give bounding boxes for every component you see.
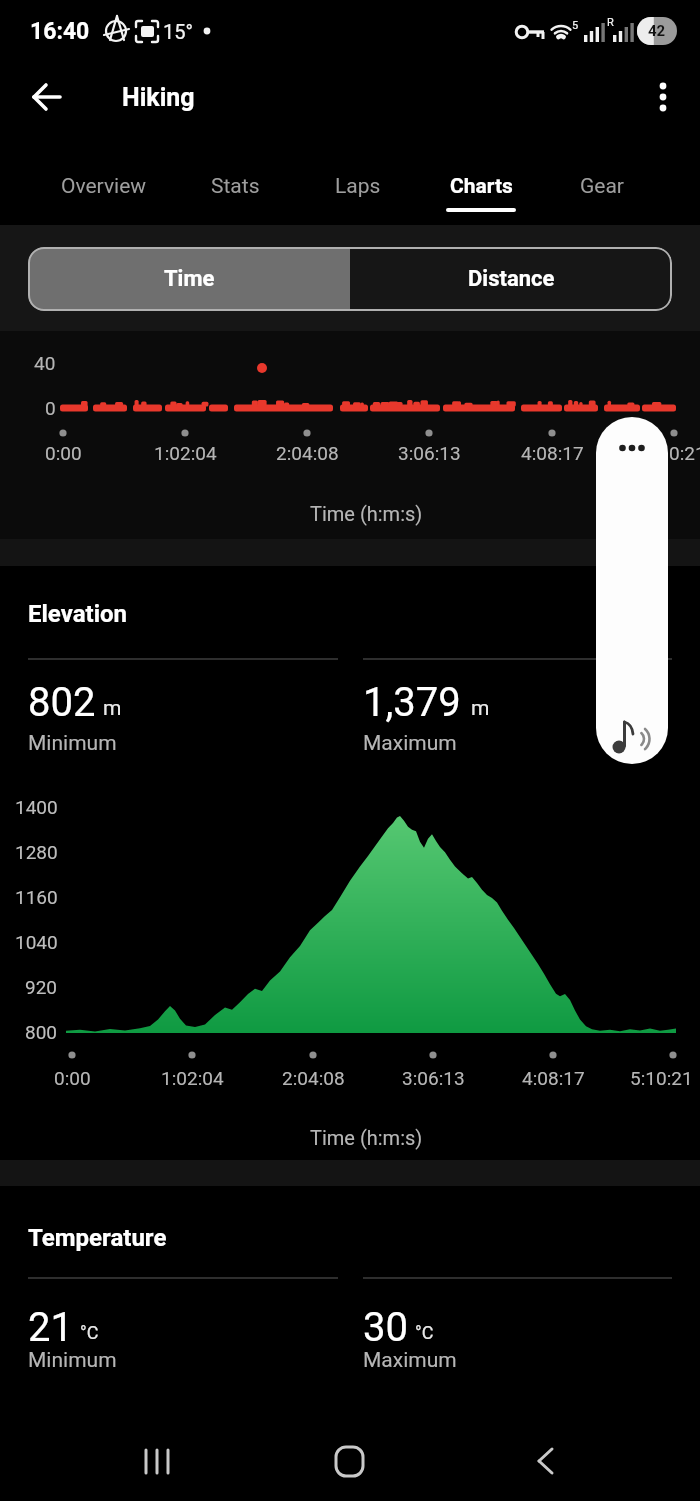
staticText: 0 (45, 397, 56, 419)
staticText: Temperature (28, 1224, 167, 1252)
staticText: 4:08:17 (521, 442, 584, 464)
staticText: m (471, 696, 490, 721)
staticText: R (607, 16, 614, 29)
staticText: 16:40 (30, 18, 90, 45)
staticText: Distance (468, 266, 555, 292)
staticText: 30 (363, 1304, 408, 1351)
button[interactable] (22, 73, 70, 121)
staticText: 1:02:04 (154, 442, 217, 464)
button[interactable]: Time (28, 247, 350, 311)
button[interactable]: Overview (42, 155, 166, 217)
staticText: 1:02:04 (161, 1067, 224, 1089)
staticText: Maximum (363, 731, 457, 756)
staticText: 4:08:17 (522, 1067, 585, 1089)
staticText: 1160 (15, 886, 58, 908)
staticText: 0:00 (54, 1067, 91, 1089)
button[interactable] (596, 417, 668, 764)
staticText: 2:04:08 (282, 1067, 345, 1089)
staticText: 1,379 (363, 679, 461, 726)
button[interactable]: Charts (419, 155, 543, 217)
staticText: Laps (335, 174, 381, 199)
staticText: Stats (211, 174, 260, 199)
button[interactable]: Stats (173, 155, 297, 217)
button[interactable] (639, 73, 687, 121)
staticText: 5:10:21 (643, 442, 700, 464)
staticText: Time (h:m:s) (310, 502, 423, 525)
button[interactable]: Distance (350, 247, 672, 311)
staticText: Time (164, 266, 215, 292)
staticText: 15° (163, 20, 193, 43)
staticText: 920 (25, 976, 58, 998)
staticText: °C (415, 1322, 434, 1343)
staticText: 1400 (15, 796, 58, 818)
staticText: 2:04:08 (276, 442, 339, 464)
staticText: Time (h:m:s) (310, 1126, 423, 1149)
button[interactable] (120, 1430, 195, 1492)
staticText: Gear (580, 174, 624, 199)
staticText: 1280 (15, 841, 58, 863)
staticText: 1040 (15, 931, 58, 953)
staticText: 21 (28, 1304, 73, 1351)
button[interactable] (312, 1430, 387, 1492)
staticText: 40 (34, 352, 56, 374)
button[interactable] (508, 1430, 583, 1492)
staticText: Minimum (28, 1348, 117, 1373)
staticText: 802 (28, 679, 96, 726)
staticText: m (103, 696, 122, 721)
staticText: 3:06:13 (402, 1067, 465, 1089)
staticText: 800 (25, 1021, 58, 1043)
staticText: Hiking (122, 83, 195, 112)
staticText: 42 (648, 22, 666, 40)
staticText: Maximum (363, 1348, 457, 1373)
staticText: Overview (61, 174, 147, 199)
staticText: 3:06:13 (398, 442, 461, 464)
staticText: °C (80, 1322, 99, 1343)
button[interactable]: Gear (540, 155, 664, 217)
button[interactable]: Laps (296, 155, 420, 217)
staticText: Elevation (28, 600, 127, 628)
staticText: 5:10:21 (630, 1067, 693, 1089)
staticText: 5 (572, 19, 579, 32)
staticText: Minimum (28, 731, 117, 756)
staticText: Charts (450, 174, 513, 199)
staticText: 0:00 (45, 442, 82, 464)
